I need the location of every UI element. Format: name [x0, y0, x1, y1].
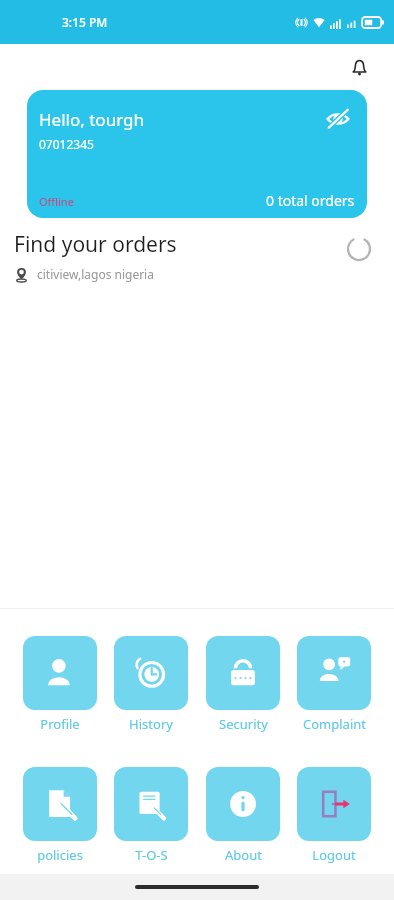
staticText: Logout: [312, 846, 356, 864]
staticText: 07012345: [39, 136, 94, 152]
button[interactable]: Refresh: [342, 232, 376, 266]
staticText: 0 total orders: [266, 191, 355, 210]
staticText: Security: [219, 715, 268, 733]
staticText: policies: [37, 846, 83, 864]
staticText: Offline: [39, 194, 74, 209]
staticText: 3:15 PM: [62, 14, 108, 30]
button[interactable]: Hello, tourgh: [27, 90, 367, 218]
staticText: Profile: [40, 715, 80, 733]
staticText: Hello, tourgh: [39, 108, 144, 131]
button[interactable]: About: [203, 767, 283, 864]
staticText: T-O-S: [135, 846, 168, 864]
button[interactable]: policies: [20, 767, 100, 864]
staticText: History: [129, 715, 173, 733]
staticText: Find your orders: [14, 230, 177, 259]
button[interactable]: T-O-S: [111, 767, 191, 864]
button[interactable]: Notifications: [342, 50, 376, 84]
button[interactable]: Profile: [20, 636, 100, 733]
button[interactable]: Complaint: [294, 636, 374, 733]
staticText: Complaint: [303, 715, 366, 733]
button[interactable]: Hide balance: [321, 102, 355, 136]
staticText: citiview,lagos nigeria: [37, 266, 154, 282]
button[interactable]: History: [111, 636, 191, 733]
button[interactable]: Security: [203, 636, 283, 733]
staticText: About: [225, 846, 262, 864]
button[interactable]: Logout: [294, 767, 374, 864]
